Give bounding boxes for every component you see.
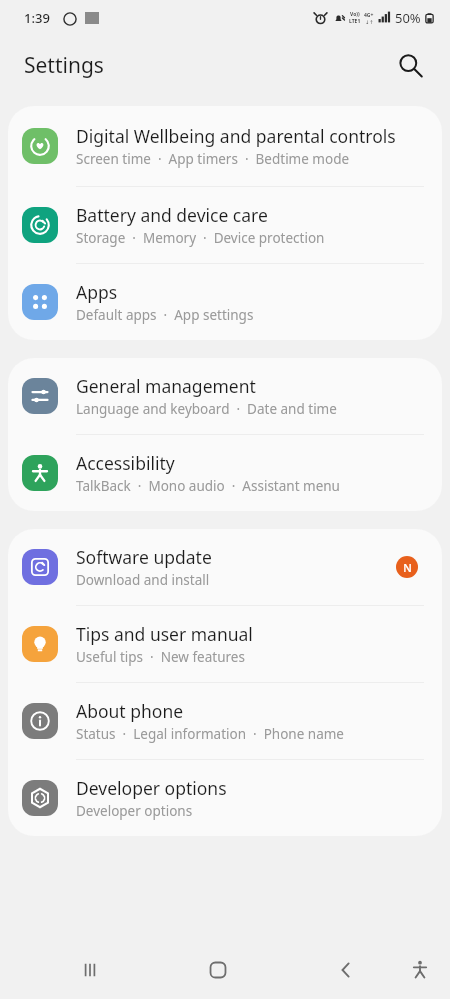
staticText: Developer options — [76, 802, 193, 820]
staticText: Download and install — [76, 571, 210, 589]
button[interactable]: Accessibility shortcut — [396, 946, 444, 994]
staticText: 1:39 — [24, 9, 50, 27]
staticText: TalkBack · Mono audio · Assistant menu — [76, 477, 340, 495]
staticText: Battery and device care — [76, 203, 268, 227]
button[interactable]: Developer options — [8, 760, 442, 836]
button[interactable]: Search — [388, 43, 432, 87]
staticText: Developer options — [76, 776, 227, 800]
button[interactable]: About phone — [8, 683, 442, 759]
button[interactable]: Back — [322, 946, 370, 994]
staticText: Accessibility — [76, 451, 175, 475]
staticText: About phone — [76, 699, 184, 723]
staticText: Storage · Memory · Device protection — [76, 229, 325, 247]
staticText: Apps — [76, 280, 118, 304]
staticText: Default apps · App settings — [76, 306, 254, 324]
button[interactable]: Accessibility — [8, 435, 442, 511]
button[interactable]: Digital Wellbeing and parental controls — [8, 106, 442, 186]
staticText: Software update — [76, 545, 212, 569]
button[interactable]: Tips and user manual — [8, 606, 442, 682]
staticText: Language and keyboard · Date and time — [76, 400, 337, 418]
staticText: Settings — [24, 51, 104, 80]
button[interactable]: Recents — [66, 946, 114, 994]
staticText: Status · Legal information · Phone name — [76, 725, 344, 743]
staticText: 4G+ — [364, 12, 374, 19]
button[interactable]: Battery and device care — [8, 187, 442, 263]
button[interactable]: Software update — [8, 529, 442, 605]
staticText: Tips and user manual — [76, 622, 253, 646]
staticText: General management — [76, 374, 256, 398]
staticText: ↓↑ — [365, 19, 374, 25]
staticText: N — [403, 560, 412, 575]
staticText: Useful tips · New features — [76, 648, 245, 666]
button[interactable]: Home — [194, 946, 242, 994]
button[interactable]: Apps — [8, 264, 442, 340]
staticText: Vo)) — [350, 11, 360, 18]
staticText: Digital Wellbeing and parental controls — [76, 124, 396, 148]
button[interactable]: General management — [8, 358, 442, 434]
staticText: Screen time · App timers · Bedtime mode — [76, 150, 350, 168]
staticText: LTE1 — [349, 18, 361, 25]
staticText: 50% — [395, 9, 421, 27]
